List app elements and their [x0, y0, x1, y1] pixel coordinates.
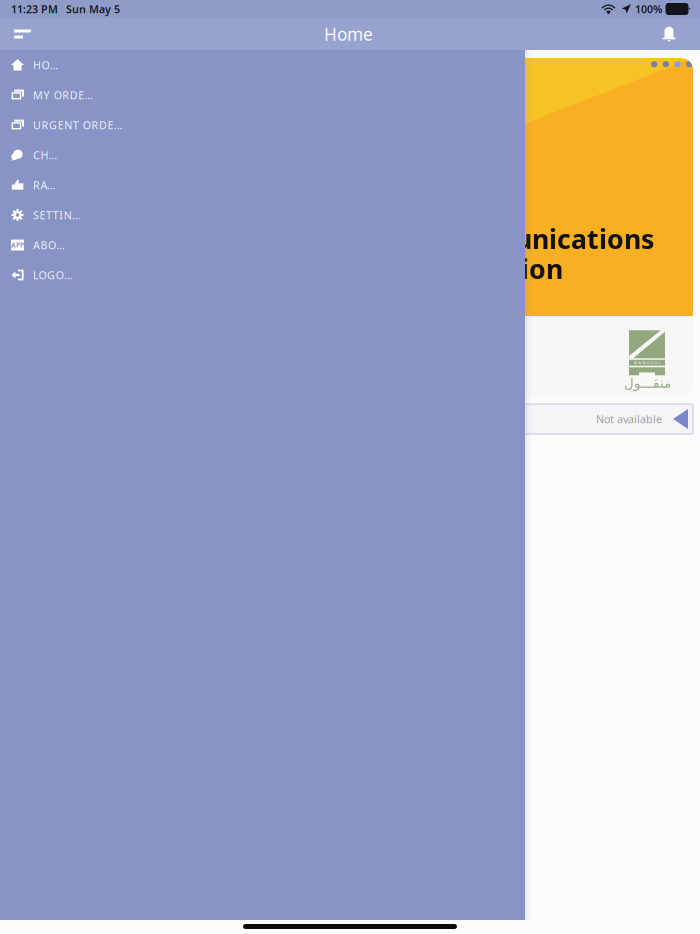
button[interactable]: RATE: [0, 170, 525, 200]
staticText: LOGOUT: [33, 268, 78, 282]
staticText: ABOUT: [33, 238, 71, 252]
staticText: and Information: [344, 251, 563, 286]
staticText: Sun May 5: [66, 2, 120, 16]
staticText: HOME: [33, 58, 66, 72]
button[interactable]: LOGOUT: [0, 260, 525, 290]
staticText: MY ORDERS: [33, 88, 98, 102]
button[interactable]: APP: [0, 230, 525, 260]
button[interactable]: CHAT: [0, 140, 525, 170]
staticText: 100%: [635, 2, 662, 16]
button[interactable]: MY ORDERS: [0, 80, 525, 110]
staticText: Not available: [596, 412, 662, 426]
staticText: SETTING: [33, 208, 80, 222]
button[interactable]: URGENT ORDERS: [0, 110, 525, 140]
staticText: منقـــول: [623, 376, 670, 391]
button[interactable]: Not available: [33, 404, 693, 434]
staticText: Ministry of Communications: [278, 221, 654, 256]
staticText: URGENT ORDERS: [33, 118, 127, 132]
staticText: APP: [11, 241, 24, 249]
staticText: 11:23 PM: [11, 2, 58, 16]
button[interactable]: Notifications: [652, 18, 700, 50]
button[interactable]: HOME: [0, 50, 525, 80]
staticText: Home: [324, 22, 373, 45]
staticText: M A N G O U L: [633, 360, 660, 365]
button[interactable]: SETTING: [0, 200, 525, 230]
button[interactable]: Menu: [0, 18, 45, 50]
staticText: CHAT: [33, 148, 61, 162]
staticText: RATE: [33, 178, 59, 192]
